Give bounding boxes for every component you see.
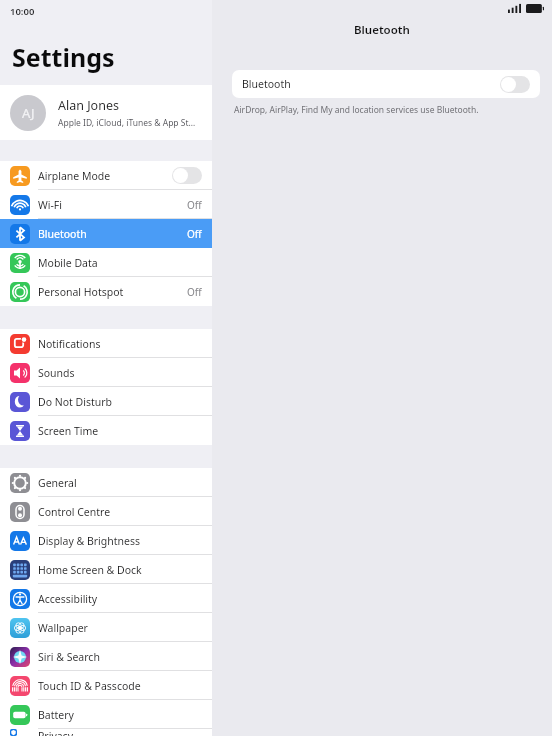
staticText: AirDrop, AirPlay, Find My and location s… xyxy=(234,104,479,116)
button[interactable]: Mobile Data xyxy=(0,248,212,277)
staticText: Privacy xyxy=(38,729,202,736)
staticText: Battery xyxy=(38,708,202,722)
button[interactable]: Privacy xyxy=(0,729,212,736)
staticText: AJ xyxy=(22,104,35,122)
button[interactable]: Touch ID & Passcode xyxy=(0,671,212,700)
staticText: Home Screen & Dock xyxy=(38,563,202,577)
button[interactable]: Wi-Fi xyxy=(0,190,212,219)
staticText: Bluetooth xyxy=(38,227,187,241)
staticText: Touch ID & Passcode xyxy=(38,679,202,693)
button[interactable]: Notifications xyxy=(0,329,212,358)
button[interactable]: Home Screen & Dock xyxy=(0,555,212,584)
staticText: Mobile Data xyxy=(38,256,202,270)
staticText: Wi-Fi xyxy=(38,198,187,212)
staticText: Off xyxy=(187,227,202,241)
button[interactable]: Battery xyxy=(0,700,212,729)
button[interactable]: Toggle xyxy=(172,167,202,184)
staticText: Alan Jones xyxy=(58,97,119,114)
staticText: Off xyxy=(187,198,202,212)
button[interactable]: Do Not Disturb xyxy=(0,387,212,416)
staticText: Do Not Disturb xyxy=(38,395,202,409)
button[interactable]: Wallpaper xyxy=(0,613,212,642)
button[interactable]: Control Centre xyxy=(0,497,212,526)
staticText: Apple ID, iCloud, iTunes & App St… xyxy=(58,117,196,129)
button[interactable]: Display & Brightness xyxy=(0,526,212,555)
button[interactable]: Airplane Mode xyxy=(0,161,212,190)
staticText: Settings xyxy=(12,40,115,74)
staticText: Notifications xyxy=(38,337,202,351)
staticText: Bluetooth xyxy=(242,77,291,91)
button[interactable]: Sounds xyxy=(0,358,212,387)
button[interactable]: Bluetooth xyxy=(0,219,212,248)
button[interactable]: Toggle xyxy=(500,76,530,93)
staticText: Off xyxy=(187,285,202,299)
button[interactable]: AJ xyxy=(0,85,212,140)
staticText: Personal Hotspot xyxy=(38,285,187,299)
button[interactable]: Bluetooth xyxy=(232,70,540,98)
staticText: Screen Time xyxy=(38,424,202,438)
staticText: Airplane Mode xyxy=(38,169,172,183)
staticText: Sounds xyxy=(38,366,202,380)
button[interactable]: Siri & Search xyxy=(0,642,212,671)
staticText: Bluetooth xyxy=(354,22,410,38)
staticText: Control Centre xyxy=(38,505,202,519)
staticText: 10:00 xyxy=(10,5,35,18)
button[interactable]: Screen Time xyxy=(0,416,212,445)
button[interactable]: Personal Hotspot xyxy=(0,277,212,306)
button[interactable]: General xyxy=(0,468,212,497)
staticText: Display & Brightness xyxy=(38,534,202,548)
staticText: Accessibility xyxy=(38,592,202,606)
staticText: Wallpaper xyxy=(38,621,202,635)
button[interactable]: Accessibility xyxy=(0,584,212,613)
staticText: Siri & Search xyxy=(38,650,202,664)
staticText: General xyxy=(38,476,202,490)
